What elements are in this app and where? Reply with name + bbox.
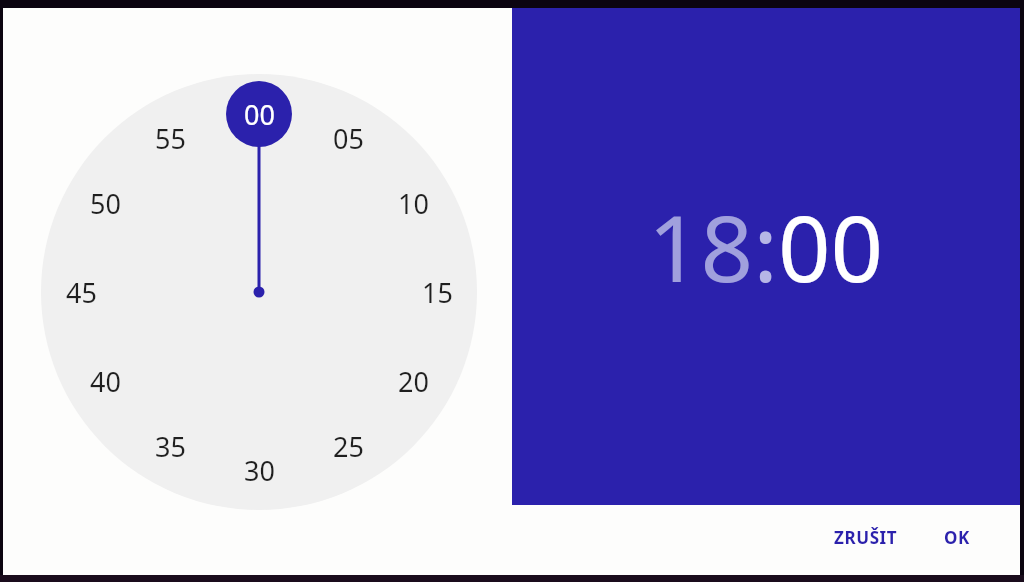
staticText: 50 [90,185,121,222]
staticText: 55 [155,120,186,157]
button[interactable]: 55 [142,118,198,158]
button[interactable]: 20 [385,361,441,401]
button[interactable]: 18:00 [648,184,884,309]
button[interactable]: 00 [231,94,287,134]
button[interactable]: 25 [320,426,376,466]
staticText: ZRUŠIT [834,526,898,549]
staticText: 35 [155,428,186,465]
button[interactable]: 50 [77,183,133,223]
staticText: 18:00 [648,184,884,309]
button[interactable]: 30 [231,450,287,490]
staticText: 10 [398,185,429,222]
staticText: 15 [422,274,453,311]
button[interactable]: 05 [320,118,376,158]
staticText: 20 [398,363,429,400]
button[interactable]: ZRUŠIT [822,516,910,558]
button[interactable]: 45 [53,272,109,312]
staticText: 25 [333,428,364,465]
staticText: 05 [333,120,364,157]
staticText: 30 [244,452,275,489]
button[interactable]: 40 [77,361,133,401]
button[interactable]: 35 [142,426,198,466]
staticText: OK [944,526,970,549]
staticText: 00 [244,96,275,133]
button[interactable]: 10 [385,183,441,223]
button[interactable]: OK [925,516,989,558]
button[interactable]: 15 [409,272,465,312]
button[interactable]: Minute dial [0,0,1024,582]
staticText: 45 [66,274,97,311]
staticText: 40 [90,363,121,400]
